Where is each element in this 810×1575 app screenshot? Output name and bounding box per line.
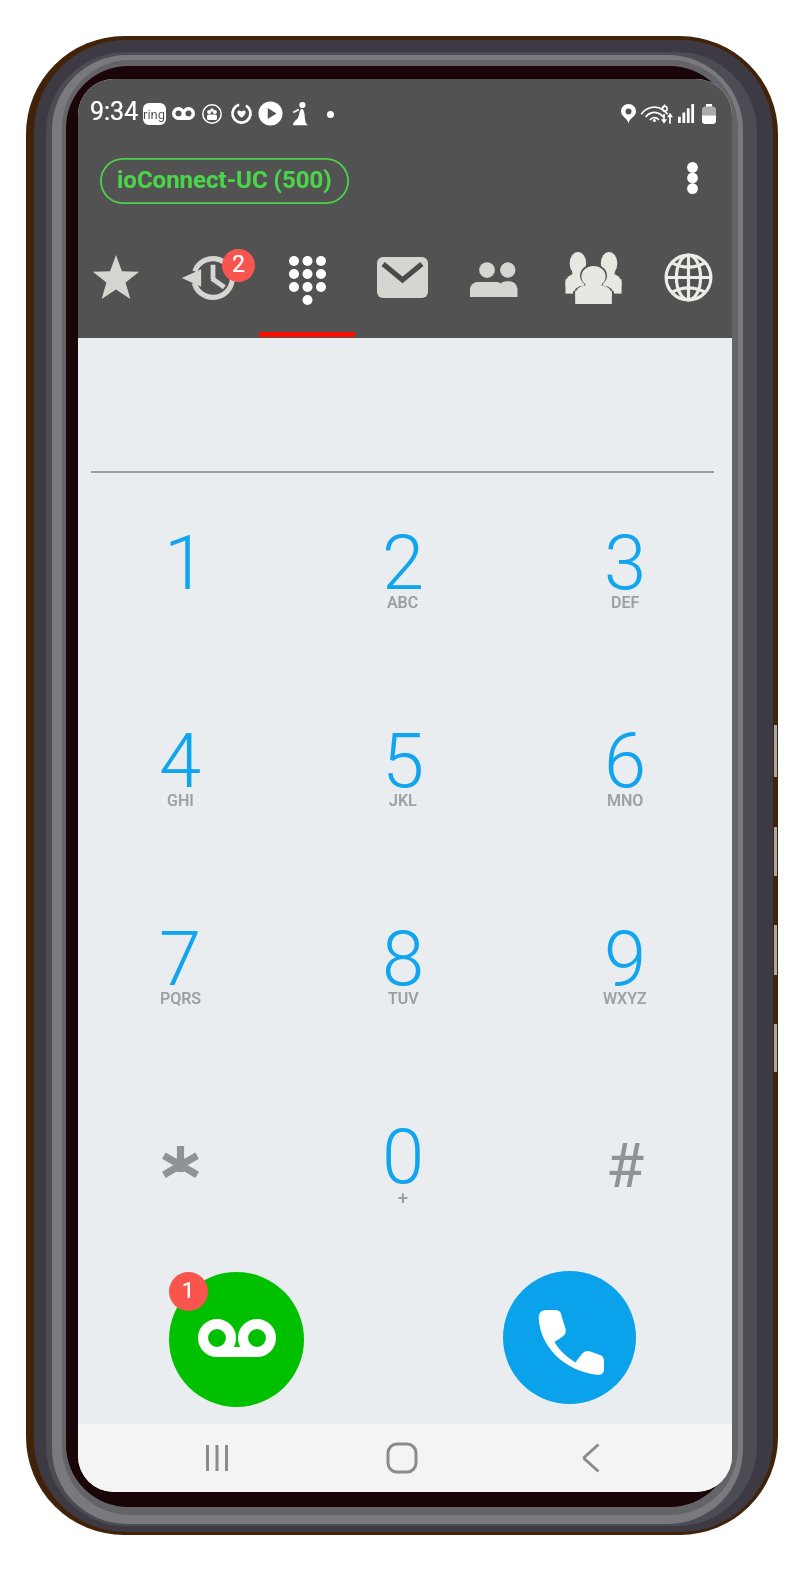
- staticText: 2: [382, 518, 425, 607]
- button[interactable]: Groups: [546, 229, 640, 338]
- staticText: WXYZ: [603, 989, 647, 1008]
- button[interactable]: Favourites: [78, 229, 163, 338]
- button[interactable]: 8: [313, 870, 493, 1050]
- staticText: 9:34: [90, 97, 139, 126]
- button[interactable]: Messages: [355, 229, 449, 338]
- button[interactable]: Contacts: [450, 229, 544, 338]
- staticText: ABC: [387, 593, 419, 612]
- button[interactable]: 9: [535, 870, 715, 1050]
- button[interactable]: ioConnect-UC (500): [100, 158, 349, 204]
- staticText: 6: [604, 716, 647, 805]
- button[interactable]: 6: [535, 672, 715, 852]
- staticText: 5: [382, 716, 425, 805]
- button[interactable]: Web: [641, 229, 732, 338]
- button[interactable]: #: [535, 1068, 715, 1248]
- staticText: DEF: [611, 593, 640, 612]
- staticText: JKL: [389, 791, 417, 810]
- staticText: 9: [604, 914, 647, 1003]
- staticText: ring: [143, 107, 166, 122]
- staticText: 3: [604, 518, 647, 607]
- button[interactable]: 5: [313, 672, 493, 852]
- button[interactable]: Back: [556, 1428, 626, 1488]
- button[interactable]: Recents: [164, 229, 258, 338]
- button[interactable]: Call: [503, 1271, 636, 1404]
- button[interactable]: 2: [313, 474, 493, 654]
- staticText: +: [398, 1187, 408, 1208]
- button[interactable]: Dialpad: [260, 229, 354, 338]
- button[interactable]: More options: [670, 155, 714, 201]
- staticText: 4: [159, 716, 202, 805]
- button[interactable]: Recents: [182, 1428, 252, 1488]
- button[interactable]: Voicemail: [169, 1272, 304, 1407]
- staticText: 2: [232, 251, 245, 278]
- staticText: ioConnect-UC (500): [117, 166, 332, 194]
- button[interactable]: 4: [90, 672, 270, 852]
- button[interactable]: Home: [367, 1428, 437, 1488]
- staticText: 0: [382, 1112, 425, 1201]
- staticText: 8: [382, 914, 425, 1003]
- button[interactable]: [90, 1068, 270, 1248]
- button[interactable]: 7: [90, 870, 270, 1050]
- button[interactable]: 3: [535, 474, 715, 654]
- staticText: MNO: [607, 791, 644, 810]
- staticText: PQRS: [160, 989, 201, 1008]
- staticText: TUV: [388, 989, 419, 1008]
- button[interactable]: 1: [90, 474, 270, 654]
- staticText: GHI: [167, 791, 194, 810]
- staticText: #: [606, 1129, 645, 1202]
- button[interactable]: 0: [313, 1068, 493, 1248]
- staticText: 1: [164, 518, 207, 607]
- staticText: 7: [159, 914, 202, 1003]
- staticText: 1: [182, 1278, 195, 1304]
